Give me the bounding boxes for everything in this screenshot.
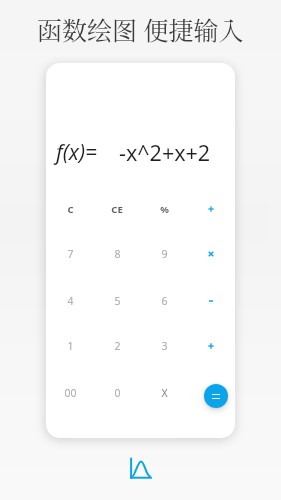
staticText: 7 [67, 247, 74, 261]
button[interactable]: Equals [204, 384, 228, 408]
staticText: % [160, 203, 169, 216]
staticText: 0 [114, 386, 121, 400]
button[interactable]: C [47, 186, 93, 232]
staticText: 3 [161, 339, 168, 353]
staticText: 8 [114, 247, 121, 261]
button[interactable]: 9 [141, 231, 187, 277]
staticText: C [67, 203, 74, 216]
staticText: 函数绘图 便捷输入 [37, 11, 244, 47]
button[interactable]: % [141, 186, 187, 232]
button[interactable]: App logo [128, 456, 154, 482]
staticText: 1 [67, 339, 74, 353]
staticText: -x^2+x+2 [119, 138, 211, 167]
button[interactable]: f(x)= [46, 131, 235, 174]
staticText: 2 [114, 339, 121, 353]
button[interactable]: Add [188, 323, 234, 369]
button[interactable]: 8 [94, 231, 140, 277]
button[interactable]: 4 [47, 278, 93, 324]
button[interactable]: 0 [94, 370, 140, 416]
staticText: 5 [114, 294, 121, 308]
button[interactable]: Multiply [188, 231, 234, 277]
button[interactable]: CE [94, 186, 140, 232]
staticText: 9 [161, 247, 168, 261]
button[interactable]: 5 [94, 278, 140, 324]
staticText: X [161, 386, 168, 400]
staticText: CE [111, 203, 123, 216]
button[interactable]: 2 [94, 323, 140, 369]
button[interactable]: 3 [141, 323, 187, 369]
button[interactable]: 1 [47, 323, 93, 369]
button[interactable]: 7 [47, 231, 93, 277]
staticText: 00 [64, 386, 77, 400]
button[interactable]: 00 [47, 370, 93, 416]
staticText: f(x)= [56, 138, 98, 167]
staticText: 4 [67, 294, 74, 308]
button[interactable]: 6 [141, 278, 187, 324]
button[interactable]: Divide [188, 186, 234, 232]
button[interactable]: X [141, 370, 187, 416]
button[interactable]: Subtract [188, 278, 234, 324]
staticText: 6 [161, 294, 168, 308]
